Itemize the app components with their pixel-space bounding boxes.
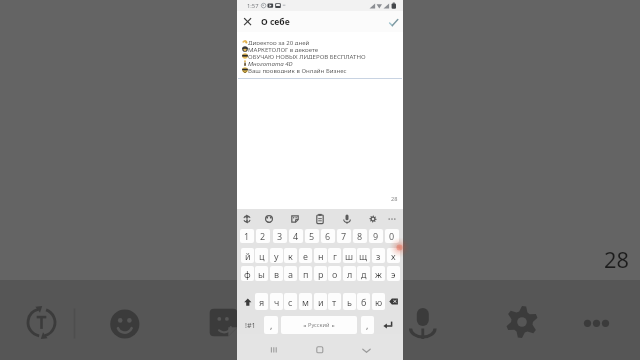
button[interactable]: Stickers — [285, 209, 305, 228]
staticText: л — [347, 268, 353, 280]
button[interactable]: 4 — [289, 229, 303, 243]
button[interactable]: 0 — [385, 229, 399, 243]
staticText: 2 — [260, 230, 266, 242]
button[interactable]: ь — [343, 293, 356, 310]
button[interactable]: ч — [270, 293, 283, 310]
button[interactable]: ◄ — [281, 316, 357, 334]
button[interactable]: к — [284, 248, 297, 263]
staticText: р — [318, 268, 324, 280]
staticText: с — [288, 296, 293, 308]
button[interactable]: 2 — [256, 229, 270, 243]
staticText: к — [288, 250, 293, 262]
staticText: 0 — [389, 230, 395, 242]
button[interactable]: 3 — [273, 229, 287, 243]
button[interactable]: 5 — [305, 229, 319, 243]
button[interactable]: о — [328, 266, 341, 281]
button[interactable]: с — [284, 293, 297, 310]
button[interactable]: н — [314, 248, 327, 263]
button[interactable]: в — [270, 266, 283, 281]
button[interactable]: 9 — [369, 229, 383, 243]
button[interactable]: , — [264, 316, 278, 334]
button[interactable]: Emoji — [259, 209, 279, 228]
button[interactable]: ж — [372, 266, 385, 281]
button[interactable]: щ — [357, 248, 370, 263]
staticText: 5 — [309, 230, 315, 242]
staticText: а — [288, 268, 294, 280]
staticText: 28 — [604, 245, 629, 275]
staticText: 6 — [325, 230, 331, 242]
button[interactable]: Close — [237, 11, 257, 32]
staticText: д — [361, 268, 367, 280]
staticText: б — [361, 296, 367, 308]
button[interactable]: б — [357, 293, 370, 310]
staticText: т — [332, 296, 337, 308]
button[interactable]: ф — [241, 266, 254, 281]
button[interactable]: !#1 — [241, 316, 259, 334]
staticText: ц — [259, 250, 265, 262]
staticText: о — [332, 268, 338, 280]
button[interactable]: д — [357, 266, 370, 281]
staticText: и — [318, 296, 324, 308]
staticText: ► — [332, 323, 335, 327]
button[interactable]: More options — [382, 209, 402, 228]
staticText: , — [366, 319, 369, 331]
button[interactable]: 1 — [240, 229, 254, 243]
staticText: ш — [345, 250, 354, 262]
staticText: н — [318, 250, 324, 262]
staticText: 1:57 — [247, 2, 259, 10]
button[interactable]: е — [299, 248, 312, 263]
staticText: щ — [359, 250, 368, 262]
button[interactable]: Shift — [241, 293, 254, 310]
staticText: в — [274, 268, 280, 280]
staticText: МАРКЕТОЛОГ в декрете — [248, 45, 319, 52]
button[interactable]: и — [314, 293, 327, 310]
staticText: О себе — [261, 16, 290, 28]
button[interactable]: з — [372, 248, 385, 263]
button[interactable]: Clipboard — [310, 209, 330, 228]
button[interactable]: Save — [384, 12, 403, 33]
staticText: ю — [375, 296, 383, 308]
button[interactable]: у — [270, 248, 283, 263]
button[interactable]: Enter — [378, 316, 398, 334]
button[interactable]: Backspace — [387, 293, 400, 310]
staticText: 7 — [341, 230, 347, 242]
staticText: ОБУЧАЮ НОВЫХ ЛИДЕРОВ БЕСПЛАТНО — [248, 52, 366, 59]
button[interactable]: , — [361, 316, 374, 334]
button[interactable]: ю — [372, 293, 385, 310]
staticText: х — [391, 250, 396, 262]
button[interactable]: г — [328, 248, 341, 263]
button[interactable]: 8 — [353, 229, 367, 243]
staticText: з — [376, 250, 381, 262]
button[interactable]: й — [241, 248, 254, 263]
staticText: ф — [244, 268, 251, 280]
button[interactable]: Home — [306, 341, 334, 359]
button[interactable]: я — [255, 293, 268, 310]
button[interactable]: Settings — [363, 209, 383, 228]
button[interactable]: Translate — [237, 209, 257, 228]
staticText: п — [303, 268, 309, 280]
button[interactable]: а — [284, 266, 297, 281]
staticText: э — [391, 268, 396, 280]
staticText: Ваш проводник в Онлайн Бизнес — [248, 66, 347, 73]
button[interactable]: л — [343, 266, 356, 281]
button[interactable]: ш — [343, 248, 356, 263]
staticText: Директор за 20 дней — [248, 38, 310, 45]
staticText: 3 — [277, 230, 283, 242]
staticText: Многоmama 4D — [248, 59, 293, 66]
button[interactable]: Hide keyboard — [352, 341, 380, 359]
button[interactable]: 6 — [321, 229, 335, 243]
staticText: Русский — [308, 321, 330, 329]
button[interactable]: Voice input — [337, 209, 357, 228]
staticText: !#1 — [245, 320, 256, 330]
button[interactable]: Recents — [260, 341, 288, 359]
button[interactable]: э — [387, 266, 400, 281]
button[interactable]: м — [299, 293, 312, 310]
button[interactable]: ц — [255, 248, 268, 263]
button[interactable]: ы — [255, 266, 268, 281]
button[interactable]: т — [328, 293, 341, 310]
staticText: ь — [347, 296, 352, 308]
button[interactable]: п — [299, 266, 312, 281]
button[interactable]: х — [387, 248, 400, 263]
button[interactable]: р — [314, 266, 327, 281]
button[interactable]: 7 — [337, 229, 351, 243]
